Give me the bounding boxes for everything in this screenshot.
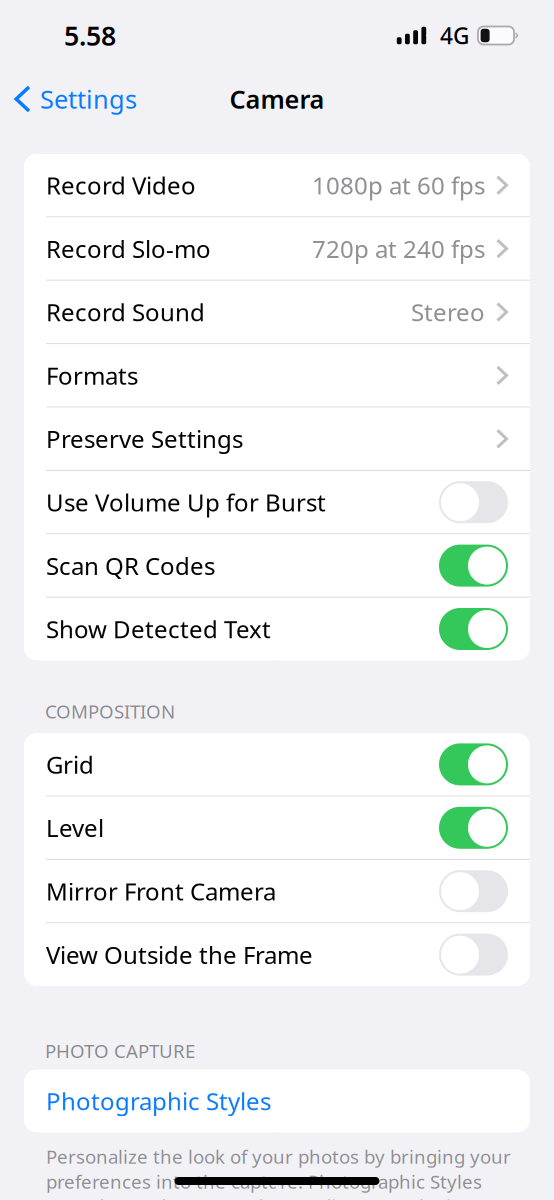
staticText: Scan QR Codes bbox=[46, 550, 215, 582]
button[interactable]: Level bbox=[24, 797, 530, 859]
staticText: 1080p at 60 fps bbox=[312, 169, 485, 201]
button[interactable]: Preserve Settings bbox=[24, 408, 530, 470]
staticText: Mirror Front Camera bbox=[46, 875, 276, 907]
staticText: Record Video bbox=[46, 169, 196, 201]
button[interactable]: Show Detected Text bbox=[24, 598, 530, 660]
staticText: Show Detected Text bbox=[46, 613, 271, 645]
staticText: Formats bbox=[46, 359, 138, 391]
staticText: PHOTO CAPTURE bbox=[45, 1038, 195, 1063]
staticText: Use Volume Up for Burst bbox=[46, 486, 326, 518]
button[interactable]: Grid bbox=[24, 733, 530, 796]
button[interactable]: Record Video bbox=[24, 154, 530, 216]
button[interactable]: Record Sound bbox=[24, 281, 530, 343]
staticText: Record Slo-mo bbox=[46, 233, 211, 265]
staticText: 4G bbox=[440, 20, 469, 50]
staticText: Settings bbox=[40, 82, 137, 116]
button[interactable]: Formats bbox=[24, 344, 530, 407]
button[interactable]: Settings bbox=[0, 71, 149, 127]
staticText: 5.58 bbox=[64, 18, 116, 53]
staticText: View Outside the Frame bbox=[46, 939, 313, 971]
button[interactable]: View Outside the Frame bbox=[24, 923, 530, 986]
button[interactable]: Use Volume Up for Burst bbox=[24, 471, 530, 533]
staticText: Photographic Styles bbox=[46, 1085, 271, 1117]
staticText: Camera bbox=[229, 82, 324, 116]
button[interactable]: Record Slo-mo bbox=[24, 217, 530, 280]
button[interactable]: Photographic Styles bbox=[24, 1070, 530, 1132]
button[interactable]: Mirror Front Camera bbox=[24, 860, 530, 922]
staticText: Personalize the look of your photos by b… bbox=[46, 1144, 511, 1200]
staticText: Preserve Settings bbox=[46, 423, 243, 455]
staticText: Record Sound bbox=[46, 296, 205, 328]
staticText: Level bbox=[46, 812, 104, 844]
staticText: Stereo bbox=[411, 296, 485, 328]
button[interactable]: Scan QR Codes bbox=[24, 534, 530, 597]
staticText: 720p at 240 fps bbox=[312, 233, 485, 265]
staticText: COMPOSITION bbox=[45, 699, 175, 724]
staticText: Grid bbox=[46, 748, 94, 780]
